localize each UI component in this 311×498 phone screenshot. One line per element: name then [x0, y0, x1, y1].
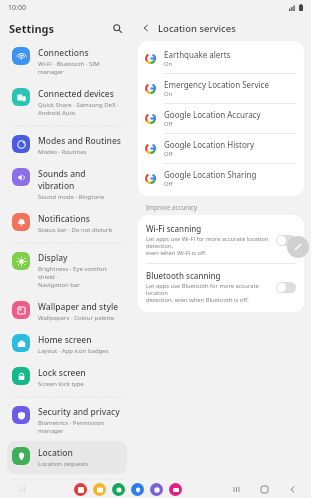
button[interactable]: Back — [138, 20, 154, 36]
staticText: Improve accuracy — [146, 203, 198, 211]
button[interactable]: Connected devices — [4, 82, 130, 123]
staticText: Location requests — [38, 460, 89, 468]
staticText: Off — [164, 180, 173, 188]
staticText: Sounds and vibration — [38, 168, 122, 192]
button[interactable]: Recents — [229, 482, 243, 496]
button[interactable]: Google Location Accuracy — [138, 104, 304, 134]
button[interactable]: Security and privacy — [4, 400, 130, 441]
button[interactable]: Location — [7, 441, 127, 474]
staticText: Quick Share · Samsung DeX · Android Auto — [38, 101, 119, 117]
staticText: Security and privacy — [38, 406, 120, 418]
staticText: Off — [164, 150, 173, 158]
button[interactable]: Wallpaper and style — [4, 295, 130, 328]
staticText: Google Location History — [164, 139, 255, 150]
staticText: Off — [164, 120, 173, 128]
button[interactable]: Home screen — [4, 328, 130, 361]
staticText: Screen lock type — [38, 380, 84, 388]
staticText: Location services — [158, 22, 236, 35]
button[interactable]: Search — [109, 20, 125, 36]
staticText: Google Location Accuracy — [164, 109, 261, 120]
button[interactable]: App 5 — [169, 483, 182, 496]
staticText: Brightness · Eye comfort shield · Naviga… — [38, 265, 122, 289]
button[interactable]: Edit — [287, 236, 309, 258]
button[interactable]: App 3 — [131, 483, 144, 496]
staticText: Settings — [9, 21, 55, 36]
staticText: Lock screen — [38, 367, 86, 379]
staticText: Connected devices — [38, 88, 114, 100]
staticText: Modes and Routines — [38, 135, 121, 147]
staticText: Wi-Fi scanning — [146, 223, 202, 234]
staticText: Layout · App icon badges — [38, 347, 109, 355]
staticText: Wallpapers · Colour palette — [38, 314, 115, 322]
button[interactable]: Display — [4, 246, 130, 295]
staticText: Status bar · Do not disturb — [38, 226, 113, 234]
staticText: Wi-Fi · Bluetooth · SIM manager — [38, 60, 122, 76]
button[interactable]: Modes and Routines — [4, 129, 130, 162]
staticText: Google Location Sharing — [164, 169, 257, 180]
staticText: 10:00 — [8, 3, 26, 13]
staticText: On — [164, 90, 173, 98]
staticText: Sound mode · Ringtone — [38, 193, 105, 201]
staticText: Bluetooth scanning — [146, 270, 221, 281]
staticText: Emergency Location Service — [164, 79, 269, 90]
staticText: Home screen — [38, 334, 92, 346]
staticText: Let apps use Bluetooth for more accurate… — [146, 282, 270, 304]
button[interactable]: Emergency Location Service — [138, 74, 304, 104]
staticText: Biometrics · Permission manager — [38, 419, 122, 435]
button[interactable]: Notifications — [4, 207, 130, 240]
button[interactable]: Google Location History — [138, 134, 304, 164]
button[interactable]: App 0 — [74, 483, 87, 496]
staticText: Notifications — [38, 213, 90, 225]
staticText: Let apps use Wi-Fi for more accurate loc… — [146, 235, 270, 257]
button[interactable]: Home — [257, 482, 271, 496]
button[interactable]: App 1 — [93, 483, 106, 496]
staticText: Wallpaper and style — [38, 301, 119, 313]
button[interactable]: Sounds and vibration — [4, 162, 130, 207]
staticText: Location — [38, 447, 73, 459]
staticText: Display — [38, 252, 68, 264]
button[interactable]: Back — [285, 482, 299, 496]
button[interactable]: Google Location Sharing — [138, 164, 304, 193]
button[interactable]: Bluetooth scanning — [138, 264, 304, 310]
button[interactable]: Earthquake alerts — [138, 44, 304, 74]
button[interactable]: Lock screen — [4, 361, 130, 394]
staticText: Earthquake alerts — [164, 49, 231, 60]
staticText: On — [164, 60, 173, 68]
staticText: Modes · Routines — [38, 148, 87, 156]
button[interactable]: All apps — [16, 483, 28, 495]
button[interactable]: Connections — [4, 41, 130, 82]
button[interactable]: Wi-Fi scanning — [138, 217, 304, 264]
staticText: Connections — [38, 47, 89, 59]
button[interactable]: App 4 — [150, 483, 163, 496]
button[interactable]: App 2 — [112, 483, 125, 496]
